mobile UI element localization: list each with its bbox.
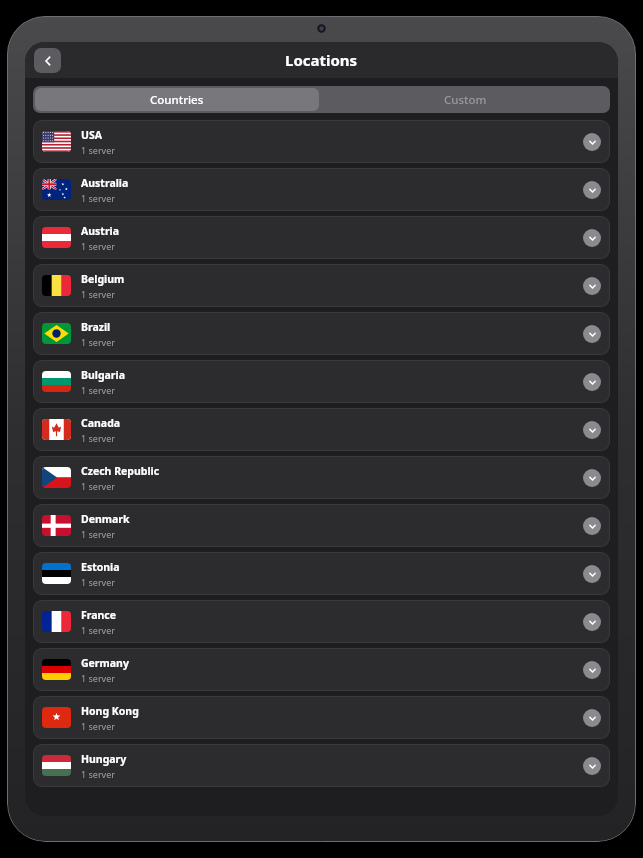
button[interactable]: Czech Republic [33, 456, 610, 499]
button[interactable]: France [33, 600, 610, 643]
button[interactable]: Expand France [583, 613, 601, 631]
button[interactable]: Brazil [33, 312, 610, 355]
button[interactable]: Expand Bulgaria [583, 373, 601, 391]
button[interactable]: Custom [321, 86, 610, 113]
staticText: 1 server [81, 576, 115, 588]
staticText: 1 server [81, 240, 115, 252]
button[interactable]: Expand Czech Republic [583, 469, 601, 487]
staticText: Germany [81, 656, 129, 670]
staticText: Canada [81, 416, 121, 430]
staticText: 1 server [81, 432, 115, 444]
staticText: Bulgaria [81, 368, 125, 382]
button[interactable]: Bulgaria [33, 360, 610, 403]
button[interactable]: Expand Belgium [583, 277, 601, 295]
button[interactable]: Expand Hong Kong [583, 709, 601, 727]
button[interactable]: Estonia [33, 552, 610, 595]
staticText: 1 server [81, 720, 115, 732]
button[interactable]: Austria [33, 216, 610, 259]
button[interactable]: Expand Australia [583, 181, 601, 199]
staticText: France [81, 608, 117, 622]
staticText: Custom [444, 92, 487, 108]
button[interactable]: Expand Germany [583, 661, 601, 679]
staticText: 1 server [81, 288, 115, 300]
button[interactable]: Denmark [33, 504, 610, 547]
button[interactable]: Belgium [33, 264, 610, 307]
staticText: Belgium [81, 272, 125, 286]
staticText: Hong Kong [81, 704, 139, 718]
staticText: Hungary [81, 752, 127, 766]
staticText: 1 server [81, 528, 115, 540]
staticText: Austria [81, 224, 120, 238]
staticText: 1 server [81, 672, 115, 684]
button[interactable]: Expand Brazil [583, 325, 601, 343]
staticText: Countries [150, 92, 204, 108]
button[interactable]: Australia [33, 168, 610, 211]
button[interactable]: Hungary [33, 744, 610, 787]
button[interactable]: Expand Estonia [583, 565, 601, 583]
button[interactable]: Expand Hungary [583, 757, 601, 775]
staticText: Brazil [81, 320, 111, 334]
button[interactable]: Expand Canada [583, 421, 601, 439]
button[interactable]: Germany [33, 648, 610, 691]
staticText: 1 server [81, 384, 115, 396]
staticText: 1 server [81, 624, 115, 636]
staticText: Estonia [81, 560, 120, 574]
staticText: Czech Republic [81, 464, 160, 478]
staticText: USA [81, 128, 102, 142]
staticText: 1 server [81, 192, 115, 204]
button[interactable]: USA [33, 120, 610, 163]
staticText: Locations [285, 50, 358, 70]
staticText: Denmark [81, 512, 130, 526]
staticText: 1 server [81, 336, 115, 348]
staticText: Australia [81, 176, 129, 190]
button[interactable]: Hong Kong [33, 696, 610, 739]
button[interactable]: Expand USA [583, 133, 601, 151]
button[interactable]: Expand Austria [583, 229, 601, 247]
button[interactable]: Countries [35, 88, 319, 111]
staticText: 1 server [81, 768, 115, 780]
button[interactable]: Back [34, 48, 61, 73]
staticText: 1 server [81, 480, 115, 492]
button[interactable]: Canada [33, 408, 610, 451]
staticText: 1 server [81, 144, 115, 156]
button[interactable]: Expand Denmark [583, 517, 601, 535]
